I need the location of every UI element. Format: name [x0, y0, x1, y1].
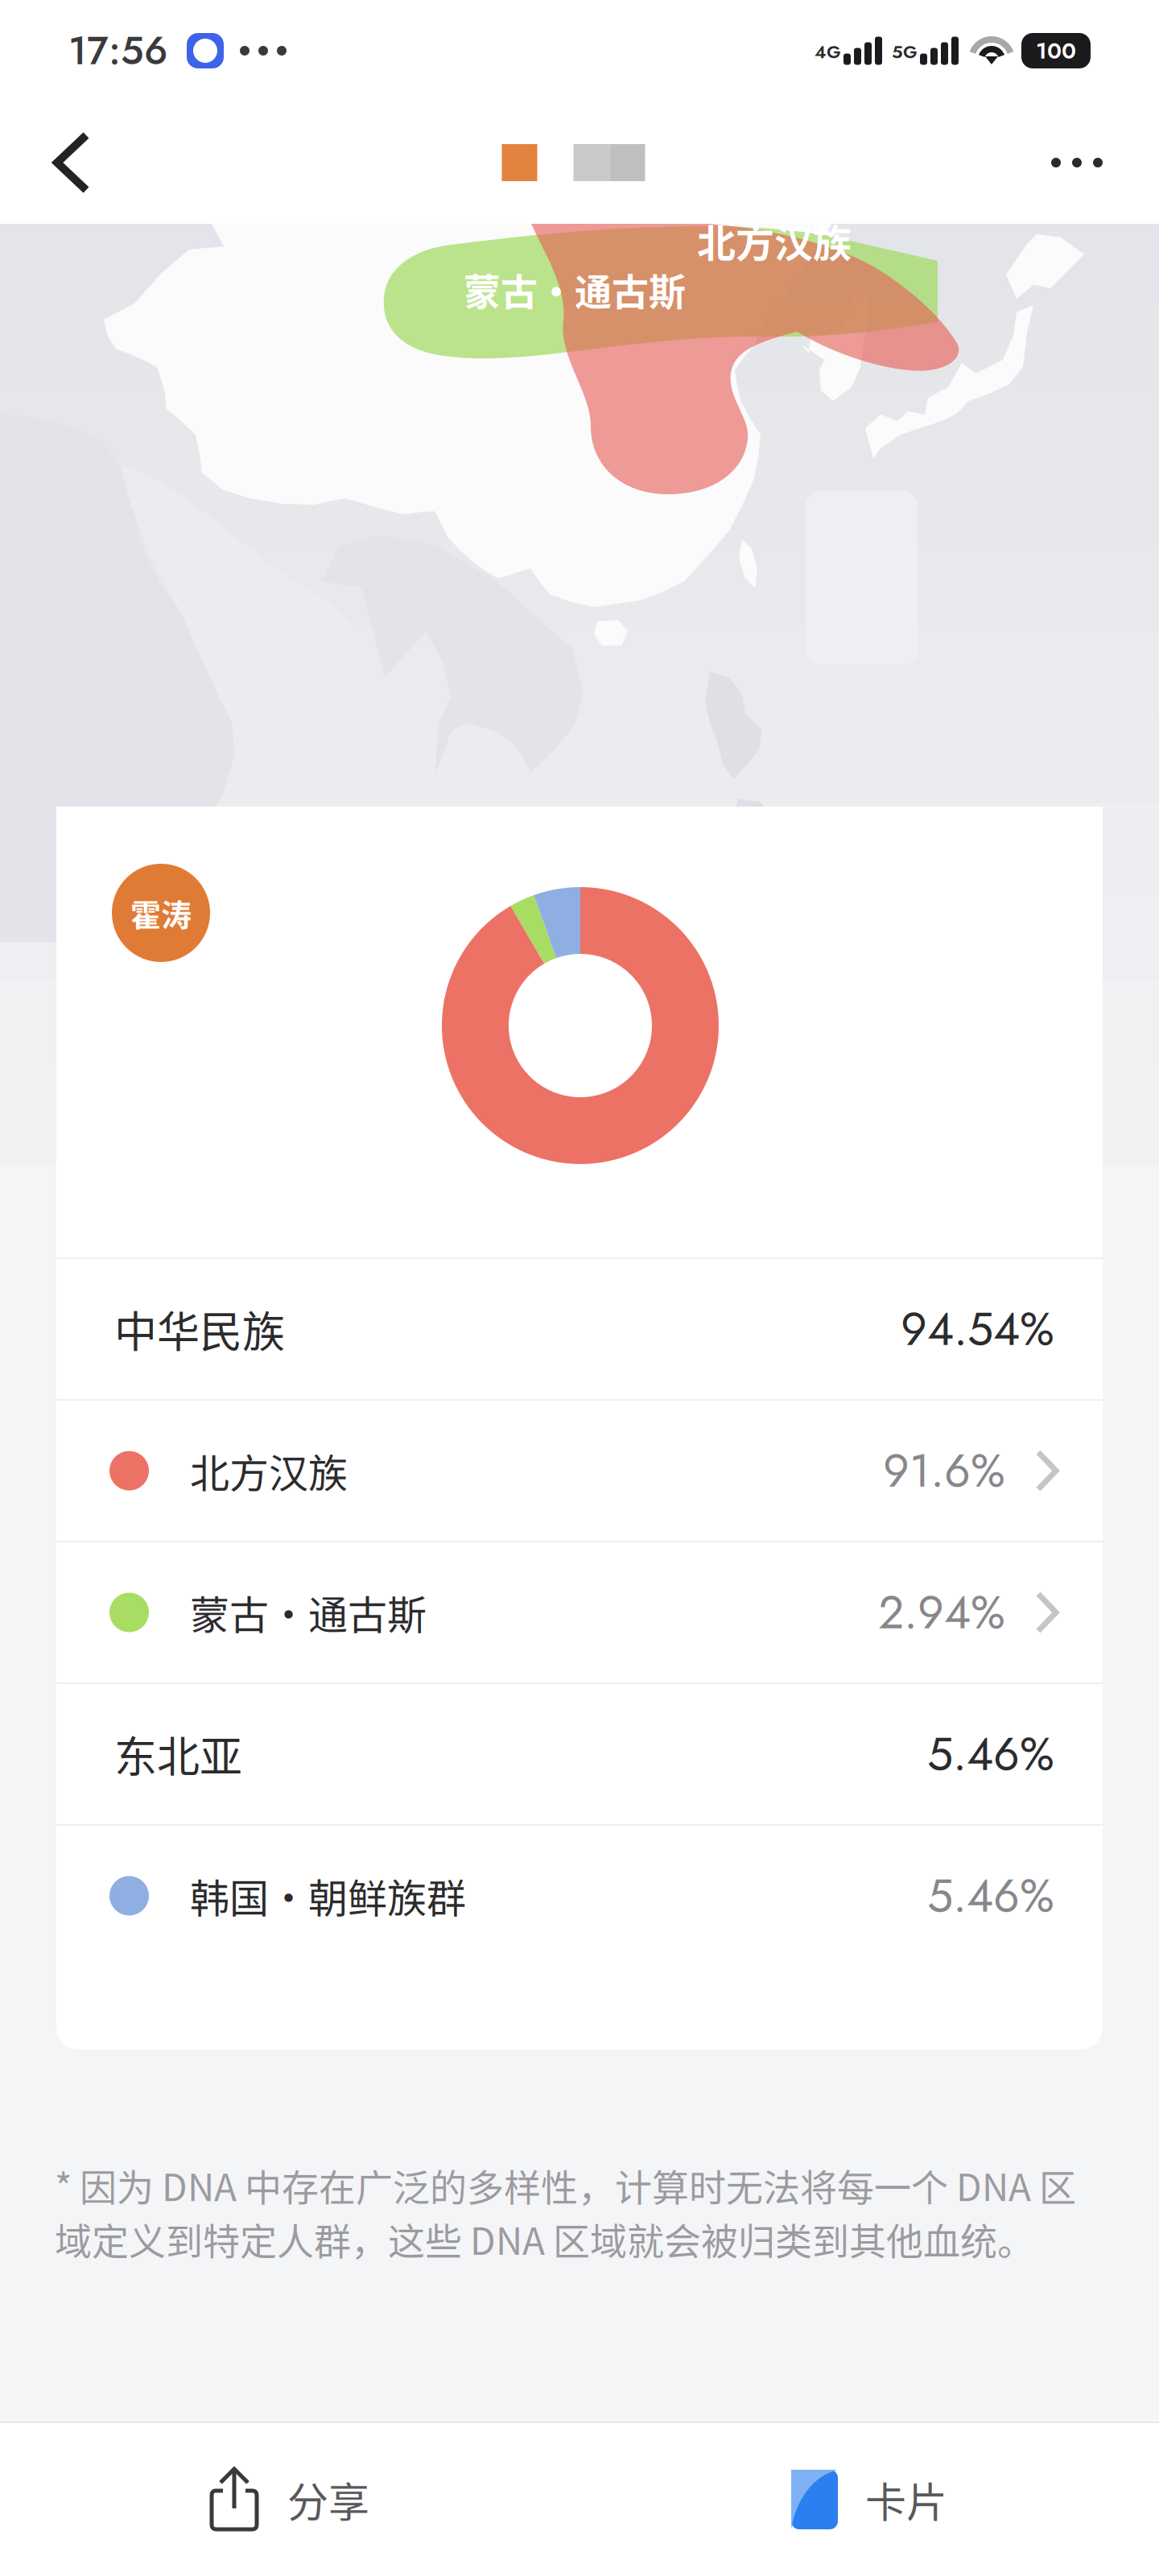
- staticText: 分享: [287, 2470, 369, 2529]
- staticText: 北方汉族: [697, 213, 852, 268]
- button[interactable]: 蒙古·通古斯: [56, 1542, 1103, 1682]
- button[interactable]: Back: [23, 101, 120, 224]
- staticText: 91.6%: [883, 1438, 1005, 1504]
- staticText: 5.46%: [927, 1863, 1054, 1929]
- staticText: * 因为 DNA 中存在广泛的多样性，计算时无法将每一个 DNA 区域定义到特定…: [55, 2158, 1076, 2265]
- staticText: 霍涛: [130, 891, 192, 935]
- staticText: 北方汉族: [190, 1442, 348, 1499]
- staticText: 东北亚: [114, 1723, 242, 1785]
- staticText: 卡片: [865, 2470, 947, 2529]
- staticText: 2.94%: [878, 1579, 1005, 1646]
- staticText: 5G: [892, 39, 918, 65]
- staticText: 4G: [815, 39, 841, 65]
- button[interactable]: 北方汉族: [56, 1401, 1103, 1541]
- button[interactable]: More options: [1027, 101, 1127, 224]
- staticText: 5.46%: [927, 1721, 1054, 1787]
- staticText: 韩国·朝鲜族群: [190, 1867, 466, 1924]
- button[interactable]: 韩国·朝鲜族群: [56, 1826, 1103, 1966]
- staticText: 100: [1036, 34, 1076, 67]
- button[interactable]: 卡片: [579, 2423, 1159, 2576]
- staticText: 蒙古·通古斯: [190, 1584, 427, 1641]
- staticText: 17:56: [68, 23, 167, 79]
- staticText: 蒙古·通古斯: [464, 262, 686, 316]
- button[interactable]: 分享: [0, 2423, 579, 2576]
- staticText: 中华民族: [114, 1298, 285, 1360]
- staticText: 94.54%: [901, 1296, 1054, 1362]
